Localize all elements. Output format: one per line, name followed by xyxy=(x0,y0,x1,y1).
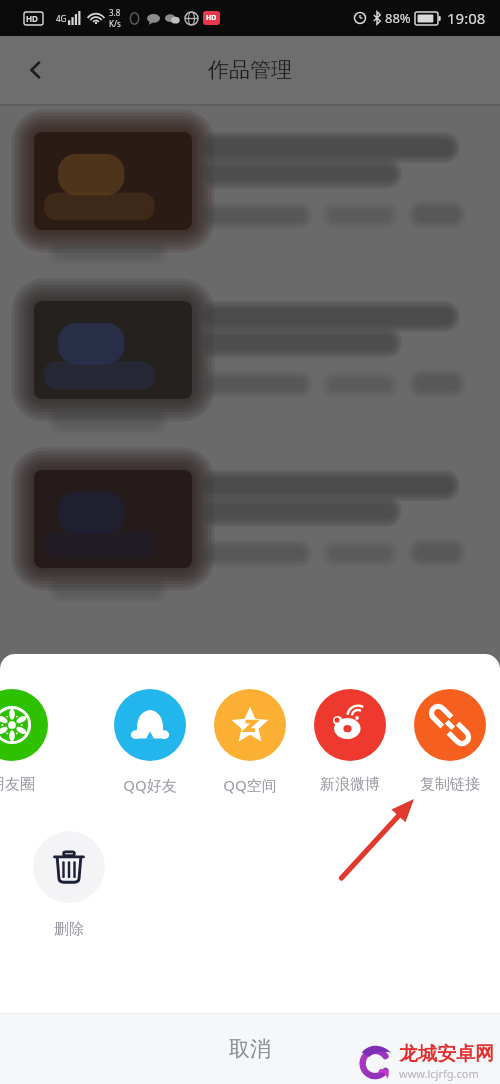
button[interactable]: 取消 xyxy=(0,1014,500,1084)
button[interactable] xyxy=(0,283,500,438)
staticText: HD xyxy=(26,13,38,24)
staticText: 作品管理 xyxy=(208,57,292,83)
button[interactable]: QQ空间 xyxy=(200,689,300,795)
staticText: 取消 xyxy=(229,1036,271,1062)
staticText: www.lcjrfg.com xyxy=(399,1066,479,1081)
button[interactable] xyxy=(0,114,500,269)
staticText: K/s xyxy=(109,18,121,29)
staticText: 88% xyxy=(385,9,411,27)
button[interactable]: Back xyxy=(14,48,58,92)
staticText: QQ好友 xyxy=(123,775,177,795)
staticText: 龙城安卓网 xyxy=(399,1042,494,1066)
staticText: 新浪微博 xyxy=(320,775,380,794)
button[interactable]: 新浪微博 xyxy=(300,689,400,794)
button[interactable]: QQ好友 xyxy=(100,689,200,795)
button[interactable]: 朋友圈 xyxy=(0,689,62,794)
staticText: QQ空间 xyxy=(223,775,277,795)
staticText: HD xyxy=(206,13,217,23)
staticText: 删除 xyxy=(54,920,84,939)
staticText: 复制链接 xyxy=(420,775,480,794)
button[interactable] xyxy=(0,452,500,607)
button[interactable]: 删除 xyxy=(0,831,138,939)
staticText: 朋友圈 xyxy=(0,775,35,794)
button[interactable]: 复制链接 xyxy=(400,689,500,794)
staticText: 3.8 xyxy=(109,7,121,18)
staticText: 19:08 xyxy=(447,8,486,28)
staticText: 4G xyxy=(56,13,67,24)
